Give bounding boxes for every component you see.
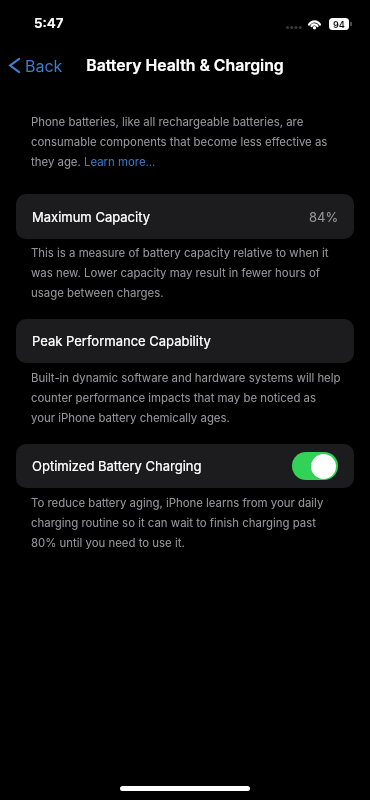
staticText: Peak Performance Capability (32, 333, 211, 349)
button[interactable]: Optimized Battery Charging toggle (292, 452, 338, 480)
button[interactable]: Back (3, 52, 71, 79)
staticText: Maximum Capacity (32, 209, 150, 225)
staticText: 94 (333, 19, 345, 30)
button[interactable]: Peak Performance Capability (16, 319, 354, 363)
staticText: Battery Health & Charging (0, 56, 370, 75)
staticText: Phone batteries, like all rechargeable b… (31, 115, 343, 169)
staticText: This is a measure of battery capacity re… (31, 246, 343, 300)
staticText: Back (25, 56, 63, 75)
button[interactable]: Maximum Capacity (16, 194, 354, 239)
staticText: Built-in dynamic software and hardware s… (31, 371, 343, 425)
button[interactable]: Optimized Battery Charging (16, 444, 354, 488)
staticText: To reduce battery aging, iPhone learns f… (31, 496, 343, 550)
staticText: 84% (309, 209, 339, 225)
staticText: 5:47 (34, 15, 64, 31)
staticText: Optimized Battery Charging (32, 458, 202, 474)
